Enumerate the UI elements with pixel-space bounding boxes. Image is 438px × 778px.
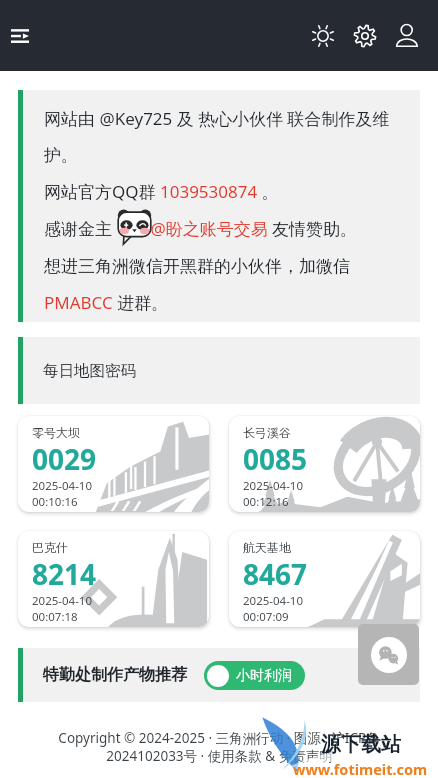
staticText: 2025-04-10 [243,593,304,609]
staticText: 0085 [243,440,308,478]
staticText: 00:07:18 [32,609,78,625]
staticText: 00:10:16 [32,494,78,510]
button[interactable]: 每日地图密码 [18,337,420,404]
button[interactable]: 网站由 @Key725 及 热心小伙伴 联合制作及维护。 网站官方QQ群 103… [18,90,420,322]
button[interactable]: 零号大坝 [18,416,209,512]
staticText: 每日地图密码 [43,361,136,381]
staticText: 特勤处制作产物推荐 [43,665,187,685]
staticText: 航天基地 [243,540,291,555]
button[interactable]: Theme [305,18,341,54]
button[interactable]: 巴克什 [18,531,209,627]
staticText: 2025-04-10 [243,478,304,494]
button[interactable]: 航天基地 [229,531,420,627]
button[interactable]: 长弓溪谷 [229,416,420,512]
staticText: 0029 [32,440,97,478]
button[interactable]: WeChat [358,624,419,685]
staticText: 2025-04-10 [32,478,93,494]
staticText: 零号大坝 [32,425,80,440]
staticText: 网站由 @Key725 及 热心小伙伴 联合制作及维护。 网站官方QQ群 103… [44,107,408,314]
staticText: 2025-04-10 [32,593,93,609]
staticText: 巴克什 [32,540,68,555]
staticText: 2024102033号 · 使用条款 & 免责声明 [106,747,333,765]
staticText: 8467 [243,555,308,593]
button[interactable]: Account [389,18,425,54]
staticText: 小时利润 [236,667,292,685]
staticText: www.fotimeit.com [293,759,428,778]
staticText: Copyright © 2024-2025 · 三角洲行动 · 图源 · 沪IC… [58,729,380,747]
staticText: 源下载站 [321,732,401,757]
staticText: 00:12:16 [243,494,289,510]
staticText: 8214 [32,555,97,593]
button[interactable]: Settings [347,18,383,54]
staticText: 00:07:09 [243,609,289,625]
button[interactable]: 小时利润 [204,661,305,690]
button[interactable]: 特勤处制作产物推荐 [18,648,420,702]
button[interactable]: Menu [0,16,40,56]
staticText: 长弓溪谷 [243,425,291,440]
